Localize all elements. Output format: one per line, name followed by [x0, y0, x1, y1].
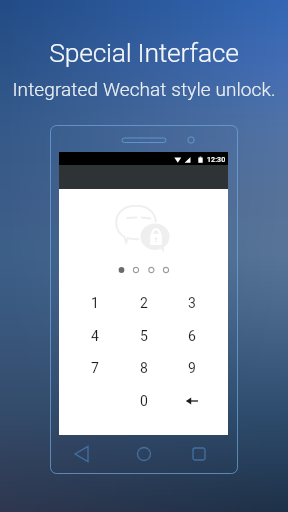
staticText: Integrated Wechat style unlock.	[0, 78, 288, 100]
staticText: 0	[140, 393, 148, 409]
button[interactable]: Back	[69, 439, 99, 469]
staticText: 8	[140, 360, 148, 376]
staticText: 9	[188, 360, 196, 376]
staticText: 7	[91, 360, 99, 376]
staticText: 5	[140, 328, 148, 344]
staticText: 12:30	[207, 156, 226, 164]
button[interactable]: 2	[120, 287, 168, 319]
button[interactable]: 1	[71, 287, 119, 319]
staticText: 6	[188, 328, 196, 344]
button[interactable]: 3	[168, 287, 216, 319]
staticText: 3	[188, 295, 196, 311]
button[interactable]: Delete	[168, 385, 216, 417]
staticText: 2	[140, 295, 148, 311]
button[interactable]: 0	[120, 385, 168, 417]
staticText: 4	[91, 328, 99, 344]
button[interactable]: 9	[168, 352, 216, 384]
button[interactable]: 8	[120, 352, 168, 384]
button[interactable]: 7	[71, 352, 119, 384]
button[interactable]: 4	[71, 320, 119, 352]
staticText: 1	[91, 295, 99, 311]
button[interactable]: 6	[168, 320, 216, 352]
staticText: Special Interface	[0, 37, 288, 68]
button[interactable]: Home	[129, 439, 159, 469]
button[interactable]: 5	[120, 320, 168, 352]
button[interactable]: Recent apps	[184, 439, 214, 469]
